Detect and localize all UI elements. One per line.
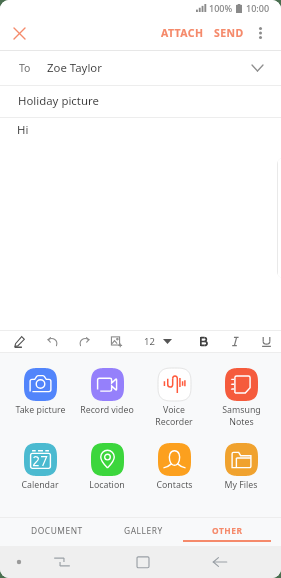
staticText: Samsung Notes: [222, 404, 261, 427]
button[interactable]: Samsung Notes: [208, 368, 274, 427]
button[interactable]: Expand recipients: [246, 57, 268, 79]
button[interactable]: Undo: [39, 331, 65, 352]
staticText: My Files: [224, 479, 258, 491]
staticText: Zoe Taylor: [47, 60, 102, 76]
staticText: OTHER: [212, 525, 243, 536]
staticText: Record video: [80, 404, 134, 416]
staticText: ATTACH: [161, 26, 204, 40]
staticText: SEND: [214, 26, 244, 40]
staticText: Calendar: [21, 479, 59, 491]
staticText: Take picture: [15, 404, 66, 416]
button[interactable]: ATTACH: [156, 19, 209, 47]
button[interactable]: Font size: [140, 331, 180, 352]
button[interactable]: Recents: [45, 546, 79, 578]
button[interactable]: Close: [5, 19, 33, 47]
button[interactable]: Underline: [253, 331, 279, 352]
button[interactable]: Bold: [190, 331, 216, 352]
staticText: Contacts: [156, 479, 193, 491]
staticText: Location: [89, 479, 125, 491]
staticText: Holiday picture: [18, 93, 99, 109]
button[interactable]: Redo: [71, 331, 97, 352]
button[interactable]: Insert image: [103, 331, 129, 352]
button[interactable]: Calendar: [7, 443, 73, 491]
staticText: To: [19, 61, 31, 75]
button[interactable]: Location: [74, 443, 140, 491]
button[interactable]: More options: [249, 22, 271, 44]
staticText: DOCUMENT: [31, 525, 83, 536]
button[interactable]: Home: [126, 546, 160, 578]
button[interactable]: DOCUMENT: [31, 518, 83, 546]
staticText: 12: [144, 335, 155, 348]
staticText: Voice Recorder: [155, 404, 193, 427]
button[interactable]: Pen: [6, 331, 32, 352]
button[interactable]: My Files: [208, 443, 274, 491]
button[interactable]: Back: [203, 546, 237, 578]
staticText: 100%: [209, 2, 233, 14]
button[interactable]: Contacts: [141, 443, 207, 491]
button[interactable]: SEND: [209, 19, 249, 47]
button[interactable]: Italic: [222, 331, 248, 352]
button[interactable]: Voice Recorder: [141, 368, 207, 427]
button[interactable]: OTHER: [201, 518, 253, 546]
staticText: GALLERY: [124, 525, 163, 536]
staticText: Hi: [17, 122, 29, 138]
button[interactable]: Show menu: [2, 546, 36, 578]
button[interactable]: Record video: [74, 368, 140, 416]
button[interactable]: GALLERY: [117, 518, 169, 546]
button[interactable]: Take picture: [7, 368, 73, 416]
staticText: 10:00: [246, 2, 270, 14]
